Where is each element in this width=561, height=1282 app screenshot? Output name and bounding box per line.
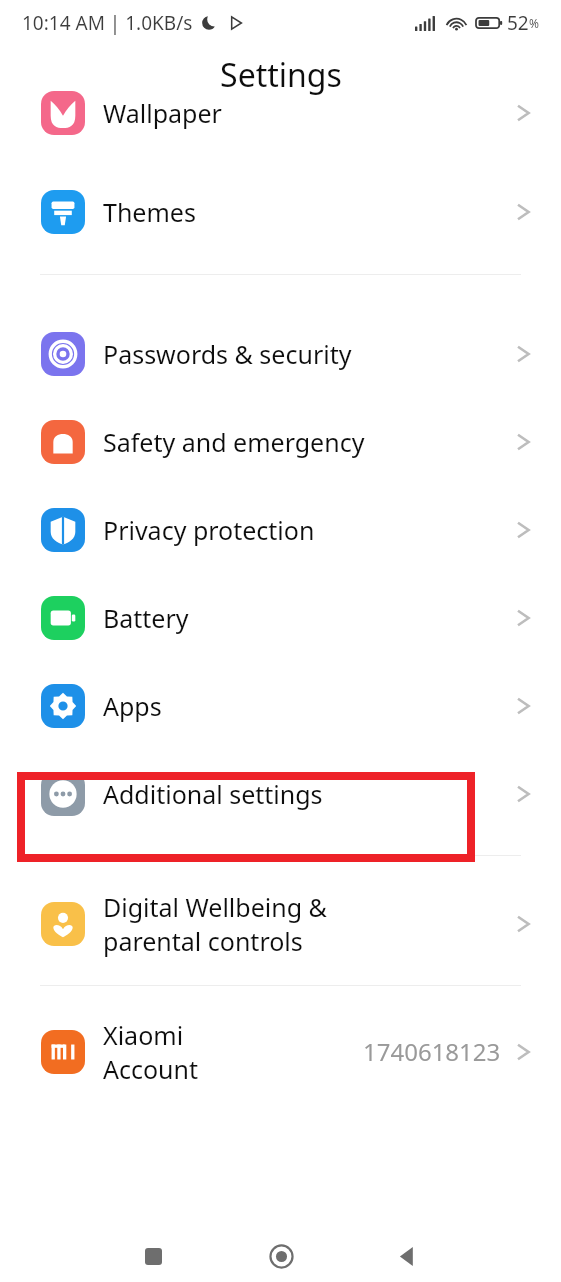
staticText: Battery	[103, 601, 189, 635]
button[interactable]: Themes	[0, 168, 561, 256]
button[interactable]: Home	[261, 1236, 301, 1276]
staticText: Safety and emergency	[103, 425, 365, 459]
staticText: Digital Wellbeing &	[103, 890, 327, 924]
staticText: Settings	[220, 53, 342, 97]
button[interactable]: Apps	[0, 662, 561, 750]
other: Open	[513, 693, 533, 719]
button[interactable]: Safety and emergency	[0, 398, 561, 486]
staticText: Xiaomi	[103, 1018, 184, 1052]
staticText: 10:14 AM | 1.0KB/s	[22, 10, 193, 36]
staticText: 1740618123	[363, 1035, 501, 1068]
other: Open	[513, 911, 533, 937]
staticText: %	[529, 15, 539, 31]
other: Open	[513, 517, 533, 543]
staticText: Apps	[103, 689, 162, 723]
staticText: Passwords & security	[103, 337, 352, 371]
button[interactable]: Recents	[133, 1236, 173, 1276]
staticText: Account	[103, 1052, 199, 1086]
button[interactable]: Xiaomi	[0, 999, 561, 1104]
other: Open	[513, 429, 533, 455]
other: Open	[513, 1039, 533, 1065]
other: Open	[513, 781, 533, 807]
button[interactable]: Passwords & security	[0, 310, 561, 398]
other: Open	[513, 100, 533, 126]
staticText: Themes	[103, 195, 196, 229]
other: Open	[513, 605, 533, 631]
staticText: 52	[507, 10, 529, 36]
button[interactable]: Wallpaper	[0, 103, 561, 168]
staticText: parental controls	[103, 924, 303, 958]
button[interactable]: Back	[387, 1236, 427, 1276]
button[interactable]: Digital Wellbeing &	[0, 871, 561, 976]
button[interactable]: Privacy protection	[0, 486, 561, 574]
button[interactable]: Battery	[0, 574, 561, 662]
staticText: Privacy protection	[103, 513, 315, 547]
other: Open	[513, 199, 533, 225]
staticText: Additional settings	[103, 777, 323, 811]
button[interactable]: Additional settings	[0, 750, 561, 838]
staticText: Wallpaper	[103, 96, 222, 130]
other: Open	[513, 341, 533, 367]
